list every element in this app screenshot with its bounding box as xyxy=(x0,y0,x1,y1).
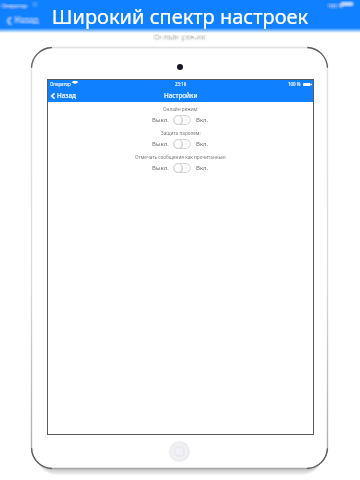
staticText: Оператор xyxy=(50,81,71,87)
staticText: 100 % xyxy=(329,2,345,9)
staticText: 100 % xyxy=(329,1,345,8)
staticText: 100 % xyxy=(328,1,344,8)
staticText: Защита паролем: xyxy=(161,130,201,136)
staticText: 100 % xyxy=(329,1,345,8)
staticText: ❮ Назад xyxy=(7,15,40,26)
staticText: Онлайн режим: xyxy=(0,32,360,42)
staticText: ❮ Назад xyxy=(6,13,39,24)
staticText: Онлайн режим: xyxy=(1,32,360,42)
staticText: Онлайн режим: xyxy=(1,32,360,42)
staticText: Онлайн режим: xyxy=(1,33,360,43)
button[interactable]: Назад xyxy=(47,90,82,101)
staticText: 100 % xyxy=(329,2,345,9)
staticText: ❮ Назад xyxy=(6,14,39,25)
staticText: ❮ Назад xyxy=(4,13,37,24)
staticText: Выкл. xyxy=(152,140,169,148)
staticText: ❮ Назад xyxy=(5,15,38,26)
staticText: 100 % xyxy=(326,1,342,8)
staticText: 100 % xyxy=(328,2,344,9)
staticText: Онлайн режим: xyxy=(0,33,359,43)
staticText: 100 % xyxy=(329,3,345,10)
staticText: ❮ Назад xyxy=(5,13,38,24)
staticText: Онлайн режим: xyxy=(0,33,360,43)
staticText: Оператор xyxy=(1,3,27,10)
staticText: ❮ Назад xyxy=(6,13,39,24)
staticText: ❮ Назад xyxy=(8,13,41,24)
staticText: Оператор xyxy=(1,1,27,8)
staticText: ❮ Назад xyxy=(6,14,39,25)
button[interactable]: Toggle xyxy=(173,163,191,173)
staticText: ❮ Назад xyxy=(5,15,38,26)
staticText: Выкл. xyxy=(152,116,169,124)
staticText: Оператор xyxy=(2,3,28,10)
button[interactable]: Toggle xyxy=(173,115,191,125)
staticText: 100 % xyxy=(329,1,345,8)
staticText: Онлайн режим: xyxy=(163,106,199,112)
staticText: Онлайн режим: xyxy=(0,32,359,42)
staticText: Оператор xyxy=(3,1,29,8)
staticText: 100 % xyxy=(328,2,344,9)
staticText: 100 % xyxy=(327,3,343,10)
staticText: Онлайн режим: xyxy=(0,32,360,42)
staticText: Онлайн режим: xyxy=(1,32,360,42)
staticText: 100 % xyxy=(326,3,342,10)
staticText: ❮ Назад xyxy=(6,15,39,26)
staticText: Оператор xyxy=(3,3,29,10)
staticText: Онлайн режим: xyxy=(0,34,359,44)
staticText: ❮ Назад xyxy=(8,14,41,25)
staticText: Оператор xyxy=(2,2,28,9)
button[interactable]: Toggle xyxy=(173,139,191,149)
staticText: Онлайн режим: xyxy=(0,33,359,43)
staticText: Оператор xyxy=(1,3,27,10)
staticText: ❮ Назад xyxy=(4,14,37,25)
staticText: Онлайн режим: xyxy=(1,33,360,43)
staticText: Онлайн режим: xyxy=(0,32,360,42)
staticText: Онлайн режим: xyxy=(0,32,360,42)
staticText: ❮ Назад xyxy=(8,13,41,24)
staticText: Оператор xyxy=(1,2,27,9)
staticText: Вкл. xyxy=(196,164,209,172)
staticText: Онлайн режим: xyxy=(1,33,360,43)
staticText: Оператор xyxy=(3,2,29,9)
staticText: ❮ Назад xyxy=(5,14,38,25)
staticText: Оператор xyxy=(0,1,26,8)
staticText: Вкл. xyxy=(196,140,209,148)
staticText: Оператор xyxy=(0,2,26,9)
staticText: Оператор xyxy=(1,1,27,8)
staticText: Оператор xyxy=(0,3,26,10)
staticText: Оператор xyxy=(2,3,28,10)
staticText: Онлайн режим: xyxy=(0,32,359,42)
staticText: ❮ Назад xyxy=(7,13,40,24)
staticText: Онлайн режим: xyxy=(1,34,360,44)
staticText: Оператор xyxy=(2,2,28,9)
staticText: Оператор xyxy=(2,1,28,8)
staticText: 100 % xyxy=(327,2,343,9)
staticText: ❮ Назад xyxy=(5,14,38,25)
staticText: Оператор xyxy=(0,2,26,9)
staticText: Онлайн режим: xyxy=(1,34,360,44)
staticText: 100 % xyxy=(327,2,343,9)
staticText: Оператор xyxy=(3,3,29,10)
staticText: Онлайн режим: xyxy=(1,32,360,42)
staticText: 100 % xyxy=(328,3,344,10)
staticText: Онлайн режим: xyxy=(0,34,359,44)
staticText: Оператор xyxy=(1,1,27,8)
staticText: Оператор xyxy=(3,2,29,9)
staticText: 100 % xyxy=(326,2,342,9)
staticText: 100 % xyxy=(327,1,343,8)
staticText: Оператор xyxy=(2,1,28,8)
staticText: Онлайн режим: xyxy=(0,33,360,43)
button[interactable]: Home xyxy=(169,441,190,462)
staticText: Онлайн режим: xyxy=(0,33,359,43)
staticText: Оператор xyxy=(0,3,26,10)
staticText: Оператор xyxy=(0,2,26,9)
staticText: Онлайн режим: xyxy=(0,33,359,43)
staticText: Оператор xyxy=(0,2,26,9)
staticText: ❮ Назад xyxy=(5,15,38,26)
staticText: Онлайн режим: xyxy=(0,32,359,42)
staticText: Оператор xyxy=(1,3,27,10)
staticText: Настройки xyxy=(164,91,198,100)
staticText: Онлайн режим: xyxy=(0,33,359,43)
staticText: Оператор xyxy=(2,2,28,9)
staticText: ❮ Назад xyxy=(8,14,41,25)
